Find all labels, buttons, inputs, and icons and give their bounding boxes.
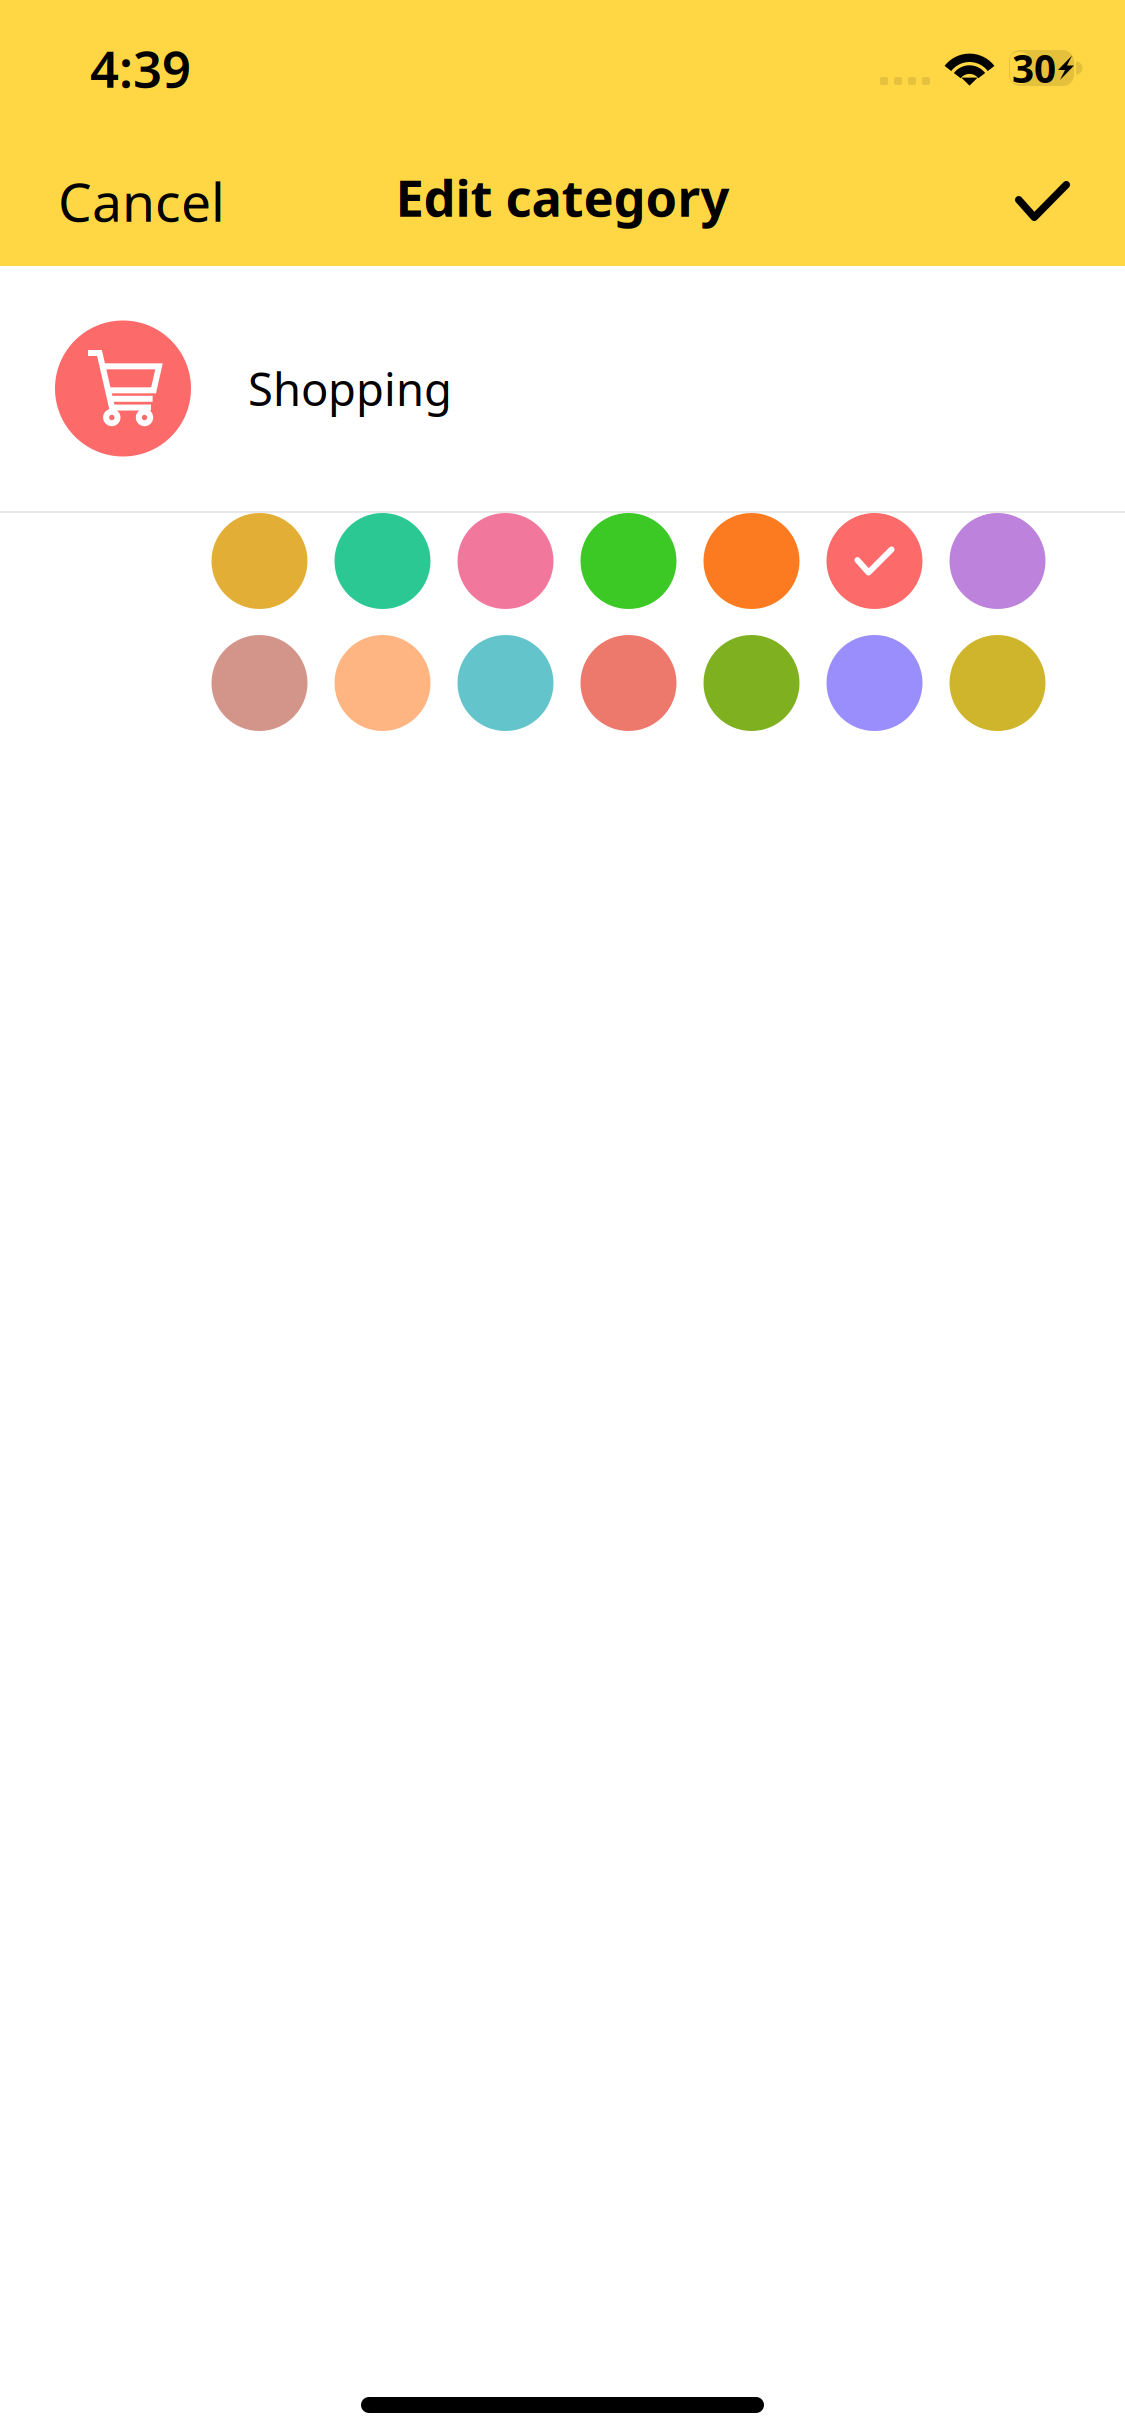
button[interactable]: Colour option [936, 635, 1059, 757]
button[interactable]: Colour option [321, 635, 444, 757]
button[interactable]: Colour option [321, 513, 444, 635]
button[interactable]: Change icon [0, 320, 248, 456]
button[interactable]: Colour option [198, 513, 321, 635]
button[interactable]: Cancel [36, 142, 247, 260]
button[interactable]: Colour option [444, 513, 567, 635]
button[interactable]: Save [993, 157, 1092, 245]
staticText: 30 [1012, 42, 1056, 94]
button[interactable]: Colour option [567, 513, 690, 635]
button[interactable]: Colour option [936, 513, 1059, 635]
button[interactable]: Colour option [813, 513, 936, 635]
button[interactable]: Colour option [567, 635, 690, 757]
staticText: Cancel [58, 166, 225, 236]
staticText: 4:39 [90, 34, 191, 102]
button[interactable]: Colour option [444, 635, 567, 757]
button[interactable]: Colour option [813, 635, 936, 757]
staticText: Edit category [395, 163, 729, 231]
button[interactable]: Colour option [198, 635, 321, 757]
button[interactable]: Colour option [690, 513, 813, 635]
staticText: Shopping [248, 358, 452, 419]
button[interactable]: Colour option [690, 635, 813, 757]
